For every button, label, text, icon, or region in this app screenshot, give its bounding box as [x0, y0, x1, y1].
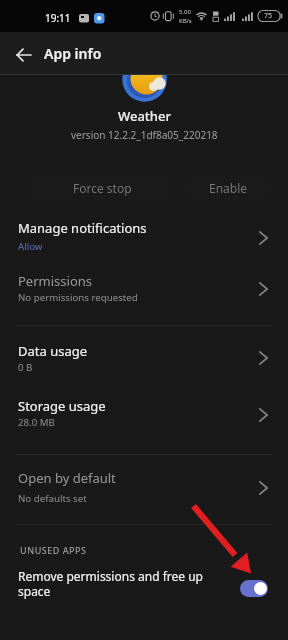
staticText: Manage notifications — [18, 219, 147, 237]
button[interactable] — [16, 48, 32, 62]
button[interactable]: Remove permissions and free up space — [0, 560, 288, 612]
staticText: Storage usage — [18, 397, 106, 415]
button[interactable]: Permissions — [0, 265, 288, 315]
staticText: UNUSED APPS — [20, 544, 87, 556]
staticText: 75 — [264, 11, 273, 21]
staticText: Remove permissions and free up space — [18, 568, 203, 599]
button[interactable]: Data usage — [0, 336, 288, 382]
staticText: KB/s — [179, 17, 192, 25]
button[interactable]: Force stop — [30, 170, 174, 206]
staticText: Open by default — [18, 469, 116, 487]
staticText: Force stop — [73, 180, 132, 196]
staticText: Enable — [209, 180, 248, 196]
button[interactable]: Enable — [184, 170, 272, 206]
staticText: version 12.2.2_1df8a05_220218 — [71, 128, 218, 142]
staticText: 28.0 MB — [18, 416, 55, 429]
staticText: Data usage — [18, 342, 88, 360]
button[interactable]: Open by default — [0, 465, 288, 511]
staticText: 19:11 — [45, 11, 71, 25]
staticText: No defaults set — [18, 492, 87, 505]
staticText: App info — [44, 44, 102, 63]
staticText: 0 B — [18, 361, 33, 374]
staticText: Allow — [18, 240, 43, 253]
button[interactable]: Manage notifications — [0, 214, 288, 262]
staticText: No permissions requested — [18, 291, 138, 304]
button[interactable] — [240, 580, 268, 597]
button[interactable]: Storage usage — [0, 392, 288, 438]
staticText: Permissions — [18, 272, 93, 290]
staticText: 5.00 — [179, 8, 191, 16]
staticText: Weather — [118, 107, 171, 125]
